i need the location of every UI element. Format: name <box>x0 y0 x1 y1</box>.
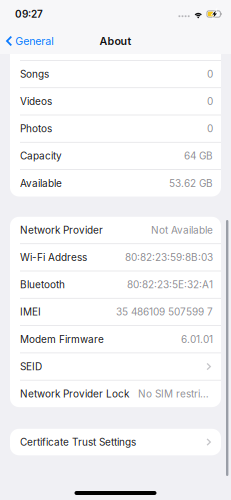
staticText: 35 486109 507599 7 <box>116 306 213 318</box>
staticText: Photos <box>20 123 52 135</box>
staticText: 09:27 <box>15 8 43 20</box>
staticText: Available <box>20 177 62 189</box>
staticText: 53.62 GB <box>169 177 213 189</box>
staticText: General <box>15 34 54 47</box>
staticText: Bluetooth <box>20 279 65 291</box>
button[interactable]: General <box>0 28 60 54</box>
staticText: Videos <box>20 95 52 107</box>
staticText: Not Available <box>151 224 213 236</box>
staticText: Capacity <box>20 150 62 162</box>
staticText: No SIM restricti… <box>138 388 213 400</box>
button[interactable]: Songs <box>10 61 221 87</box>
button[interactable]: Certificate Trust Settings <box>10 429 221 455</box>
staticText: 6.01.01 <box>181 333 213 345</box>
button[interactable]: Photos <box>10 115 221 142</box>
staticText: 80:82:23:5E:32:A1 <box>127 279 213 291</box>
staticText: 0 <box>207 68 213 80</box>
button[interactable]: Capacity <box>10 143 221 169</box>
button[interactable]: Applications <box>10 33 221 60</box>
staticText: Songs <box>20 68 49 80</box>
staticText: Network Provider <box>20 224 103 236</box>
staticText: IMEI <box>20 306 41 318</box>
staticText: Modem Firmware <box>20 333 104 345</box>
staticText: Certificate Trust Settings <box>20 436 136 448</box>
button[interactable]: Modem Firmware <box>10 326 221 352</box>
staticText: 64 GB <box>184 150 213 162</box>
button[interactable]: Available <box>10 170 221 196</box>
button[interactable]: IMEI <box>10 299 221 325</box>
button[interactable]: Network Provider <box>10 217 221 243</box>
button[interactable]: Bluetooth <box>10 271 221 298</box>
staticText: 0 <box>207 123 213 135</box>
button[interactable]: Videos <box>10 88 221 115</box>
staticText: SEID <box>20 360 42 373</box>
button[interactable]: Wi-Fi Address <box>10 244 221 271</box>
button[interactable]: SEID <box>10 353 221 380</box>
staticText: Network Provider Lock <box>20 388 129 400</box>
button[interactable]: Network Provider Lock <box>10 381 221 407</box>
staticText: About <box>99 34 131 47</box>
staticText: 80:82:23:59:8B:03 <box>125 251 213 263</box>
staticText: 0 <box>207 95 213 107</box>
staticText: Applications <box>20 41 77 53</box>
staticText: Wi-Fi Address <box>20 251 87 263</box>
